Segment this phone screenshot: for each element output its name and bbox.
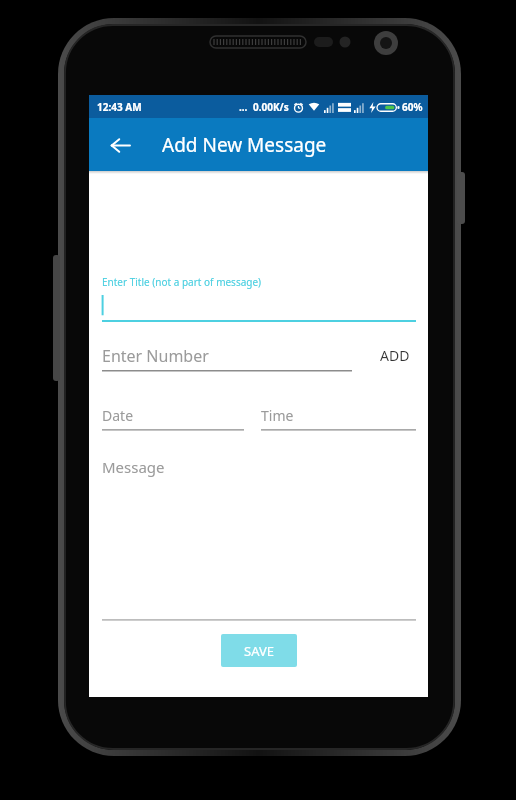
staticText: Enter Title (not a part of message) [102, 275, 262, 289]
button[interactable] [102, 340, 352, 372]
button[interactable]: ADD [371, 341, 419, 369]
button[interactable] [102, 456, 416, 616]
staticText: SAVE [244, 642, 274, 660]
staticText: 0.00K/s [253, 100, 289, 114]
staticText: Enter Number [102, 345, 209, 367]
staticText: Message [102, 457, 165, 477]
staticText: ADD [380, 346, 410, 365]
staticText: ... [239, 100, 248, 114]
staticText: Add New Message [162, 132, 327, 158]
staticText: 12:43 AM [97, 100, 142, 114]
button[interactable]: SAVE [221, 634, 297, 667]
button[interactable]: Back [103, 128, 137, 162]
staticText: Time [261, 406, 294, 425]
button[interactable] [102, 401, 244, 431]
button[interactable] [261, 401, 416, 431]
staticText: Date [102, 406, 134, 425]
staticText: 60% [402, 100, 423, 114]
button[interactable] [102, 295, 415, 321]
